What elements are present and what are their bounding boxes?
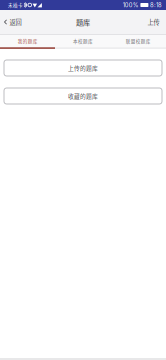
staticText: 收藏的题库 — [68, 92, 98, 100]
staticText: 题库 — [76, 17, 90, 27]
button[interactable]: 上传的题库 — [4, 60, 162, 76]
staticText: 我的题库 — [18, 38, 38, 44]
button[interactable]: 返回 — [0, 10, 27, 34]
button[interactable]: 我的题库 — [0, 35, 55, 48]
staticText: 上传的题库 — [68, 64, 98, 72]
staticText: 联盟校题库 — [126, 38, 151, 44]
staticText: 返回 — [10, 17, 22, 27]
staticText: 8:18 — [150, 1, 162, 9]
staticText: 未插卡 — [8, 2, 23, 8]
staticText: 100% — [123, 1, 139, 9]
button[interactable]: 收藏的题库 — [4, 88, 162, 104]
staticText: 上传 — [147, 17, 159, 27]
button[interactable]: 本校题库 — [55, 35, 111, 48]
button[interactable]: 上传 — [141, 10, 166, 34]
staticText: 本校题库 — [73, 38, 93, 44]
button[interactable]: 联盟校题库 — [111, 35, 166, 48]
